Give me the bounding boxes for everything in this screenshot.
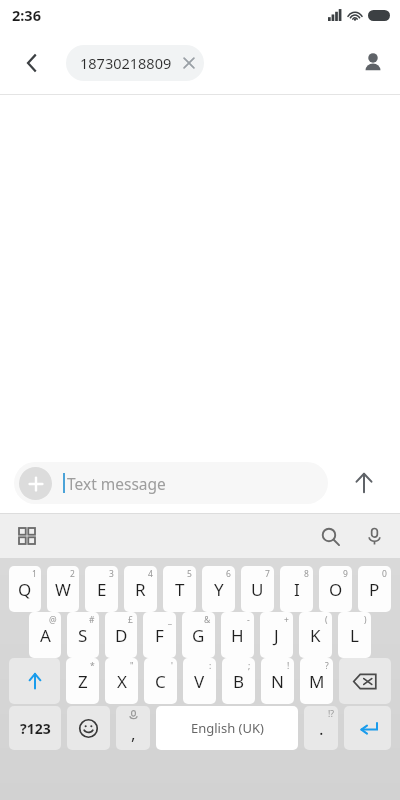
button[interactable]: Back xyxy=(8,39,56,87)
staticText: £ xyxy=(128,614,133,626)
staticText: 0 xyxy=(382,568,387,580)
button[interactable]: ) xyxy=(338,612,371,658)
button[interactable]: Voice input xyxy=(356,518,392,554)
staticText: I xyxy=(294,578,300,601)
button[interactable]: 18730218809 xyxy=(66,45,204,81)
button[interactable]: , xyxy=(116,706,150,750)
button[interactable]: Send xyxy=(342,461,386,505)
button[interactable]: English (UK) xyxy=(156,706,298,750)
button[interactable]: 1 xyxy=(9,566,41,612)
staticText: 3 xyxy=(109,568,114,580)
button[interactable]: 7 xyxy=(241,566,274,612)
staticText: # xyxy=(89,614,95,626)
button[interactable]: 8 xyxy=(280,566,313,612)
staticText: N xyxy=(271,670,284,693)
staticText: 5 xyxy=(187,568,192,580)
staticText: J xyxy=(274,624,279,647)
staticText: !? xyxy=(328,708,334,720)
staticText: , xyxy=(131,722,136,745)
staticText: 2:36 xyxy=(12,5,41,25)
staticText: Y xyxy=(214,578,224,601)
button[interactable]: ( xyxy=(299,612,332,658)
button[interactable]: ? xyxy=(300,658,333,704)
staticText: English (UK) xyxy=(191,719,264,737)
staticText: Q xyxy=(18,578,32,601)
staticText: L xyxy=(350,624,359,647)
button[interactable]: 6 xyxy=(202,566,235,612)
staticText: Text message xyxy=(67,473,166,494)
staticText: V xyxy=(194,670,205,693)
button[interactable]: ' xyxy=(144,658,177,704)
button[interactable]: ! xyxy=(261,658,294,704)
other: Enter xyxy=(344,706,391,750)
button[interactable]: & xyxy=(182,612,215,658)
button[interactable]: !? xyxy=(304,706,338,750)
staticText: ) xyxy=(364,614,367,626)
button[interactable]: : xyxy=(183,658,216,704)
button[interactable]: ; xyxy=(222,658,255,704)
button[interactable]: 9 xyxy=(319,566,352,612)
staticText: & xyxy=(204,614,211,626)
staticText: W xyxy=(55,578,71,601)
staticText: " xyxy=(130,660,134,672)
button[interactable]: £ xyxy=(105,612,137,658)
staticText: H xyxy=(231,624,244,647)
button[interactable]: - xyxy=(221,612,254,658)
other: Emoji xyxy=(67,706,110,750)
button[interactable]: Add attachment xyxy=(19,467,52,500)
button[interactable]: 4 xyxy=(124,566,157,612)
staticText: O xyxy=(329,578,343,601)
staticText: ? xyxy=(325,660,329,672)
staticText: - xyxy=(247,614,250,626)
button[interactable]: + xyxy=(260,612,293,658)
button[interactable]: Shift xyxy=(9,658,60,704)
staticText: P xyxy=(369,578,380,601)
staticText: D xyxy=(115,624,128,647)
button[interactable]: Enter xyxy=(344,706,391,750)
button[interactable]: 0 xyxy=(358,566,391,612)
staticText: 1 xyxy=(32,568,37,580)
staticText: @ xyxy=(49,614,57,626)
button[interactable]: 3 xyxy=(85,566,118,612)
button[interactable]: 5 xyxy=(163,566,196,612)
staticText: . xyxy=(319,717,324,740)
button[interactable]: _ xyxy=(143,612,176,658)
staticText: S xyxy=(78,624,88,647)
button[interactable]: Backspace xyxy=(339,658,391,704)
staticText: : xyxy=(209,660,212,672)
button[interactable]: Keyboard options xyxy=(10,519,44,553)
staticText: G xyxy=(192,624,205,647)
staticText: ?123 xyxy=(20,719,51,738)
button[interactable]: Emoji xyxy=(67,706,110,750)
staticText: 8 xyxy=(304,568,309,580)
staticText: E xyxy=(97,578,107,601)
staticText: ' xyxy=(171,660,173,672)
staticText: X xyxy=(117,670,127,693)
staticText: B xyxy=(233,670,245,693)
button[interactable]: @ xyxy=(29,612,61,658)
staticText: 4 xyxy=(148,568,153,580)
other: Backspace xyxy=(339,658,391,704)
other: Shift xyxy=(9,658,60,704)
button[interactable]: # xyxy=(67,612,99,658)
staticText: 9 xyxy=(343,568,348,580)
button[interactable]: Add attachment xyxy=(14,462,328,504)
button[interactable]: Search xyxy=(312,518,348,554)
staticText: K xyxy=(310,624,321,647)
staticText: _ xyxy=(168,614,172,626)
button[interactable]: ?123 xyxy=(9,706,61,750)
button[interactable]: Contact details xyxy=(349,39,397,87)
button[interactable]: 2 xyxy=(47,566,79,612)
staticText: F xyxy=(155,624,164,647)
button[interactable]: * xyxy=(66,658,99,704)
staticText: 2 xyxy=(70,568,75,580)
staticText: M xyxy=(309,670,325,693)
staticText: A xyxy=(40,624,51,647)
staticText: + xyxy=(284,614,289,626)
staticText: U xyxy=(251,578,264,601)
staticText: ( xyxy=(325,614,328,626)
staticText: 6 xyxy=(226,568,231,580)
staticText: Z xyxy=(78,670,88,693)
staticText: * xyxy=(90,660,95,672)
button[interactable]: " xyxy=(105,658,138,704)
